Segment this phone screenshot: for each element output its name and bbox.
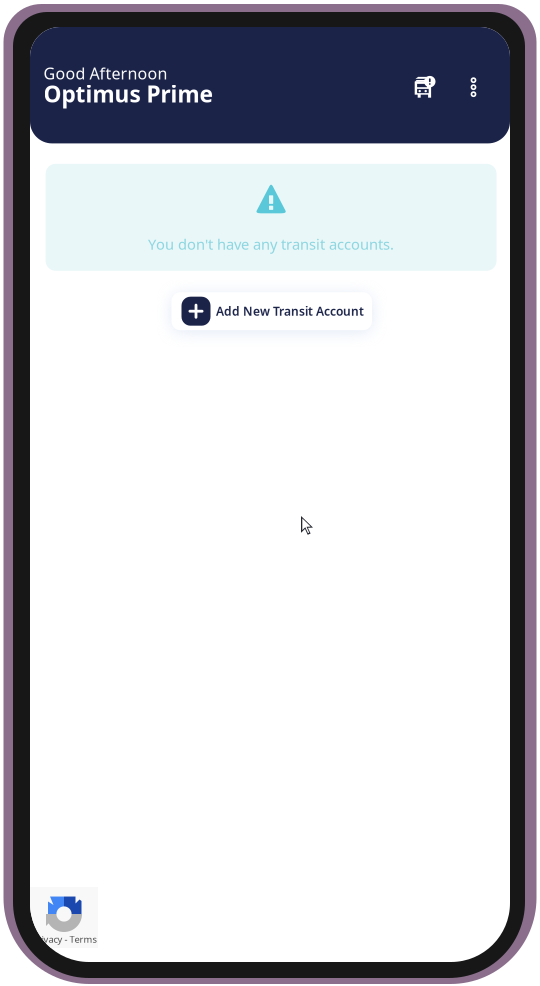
staticText: Add New Transit Account bbox=[216, 303, 364, 319]
staticText: Optimus Prime bbox=[43, 79, 213, 109]
staticText: You don't have any transit accounts. bbox=[148, 234, 394, 254]
button[interactable]: More options bbox=[461, 68, 485, 102]
button[interactable]: Transit alerts bbox=[406, 68, 442, 103]
staticText: Privacy - Terms bbox=[31, 933, 96, 945]
button[interactable]: Add New Transit Account bbox=[171, 292, 372, 330]
staticText: Good Afternoon bbox=[43, 63, 167, 84]
